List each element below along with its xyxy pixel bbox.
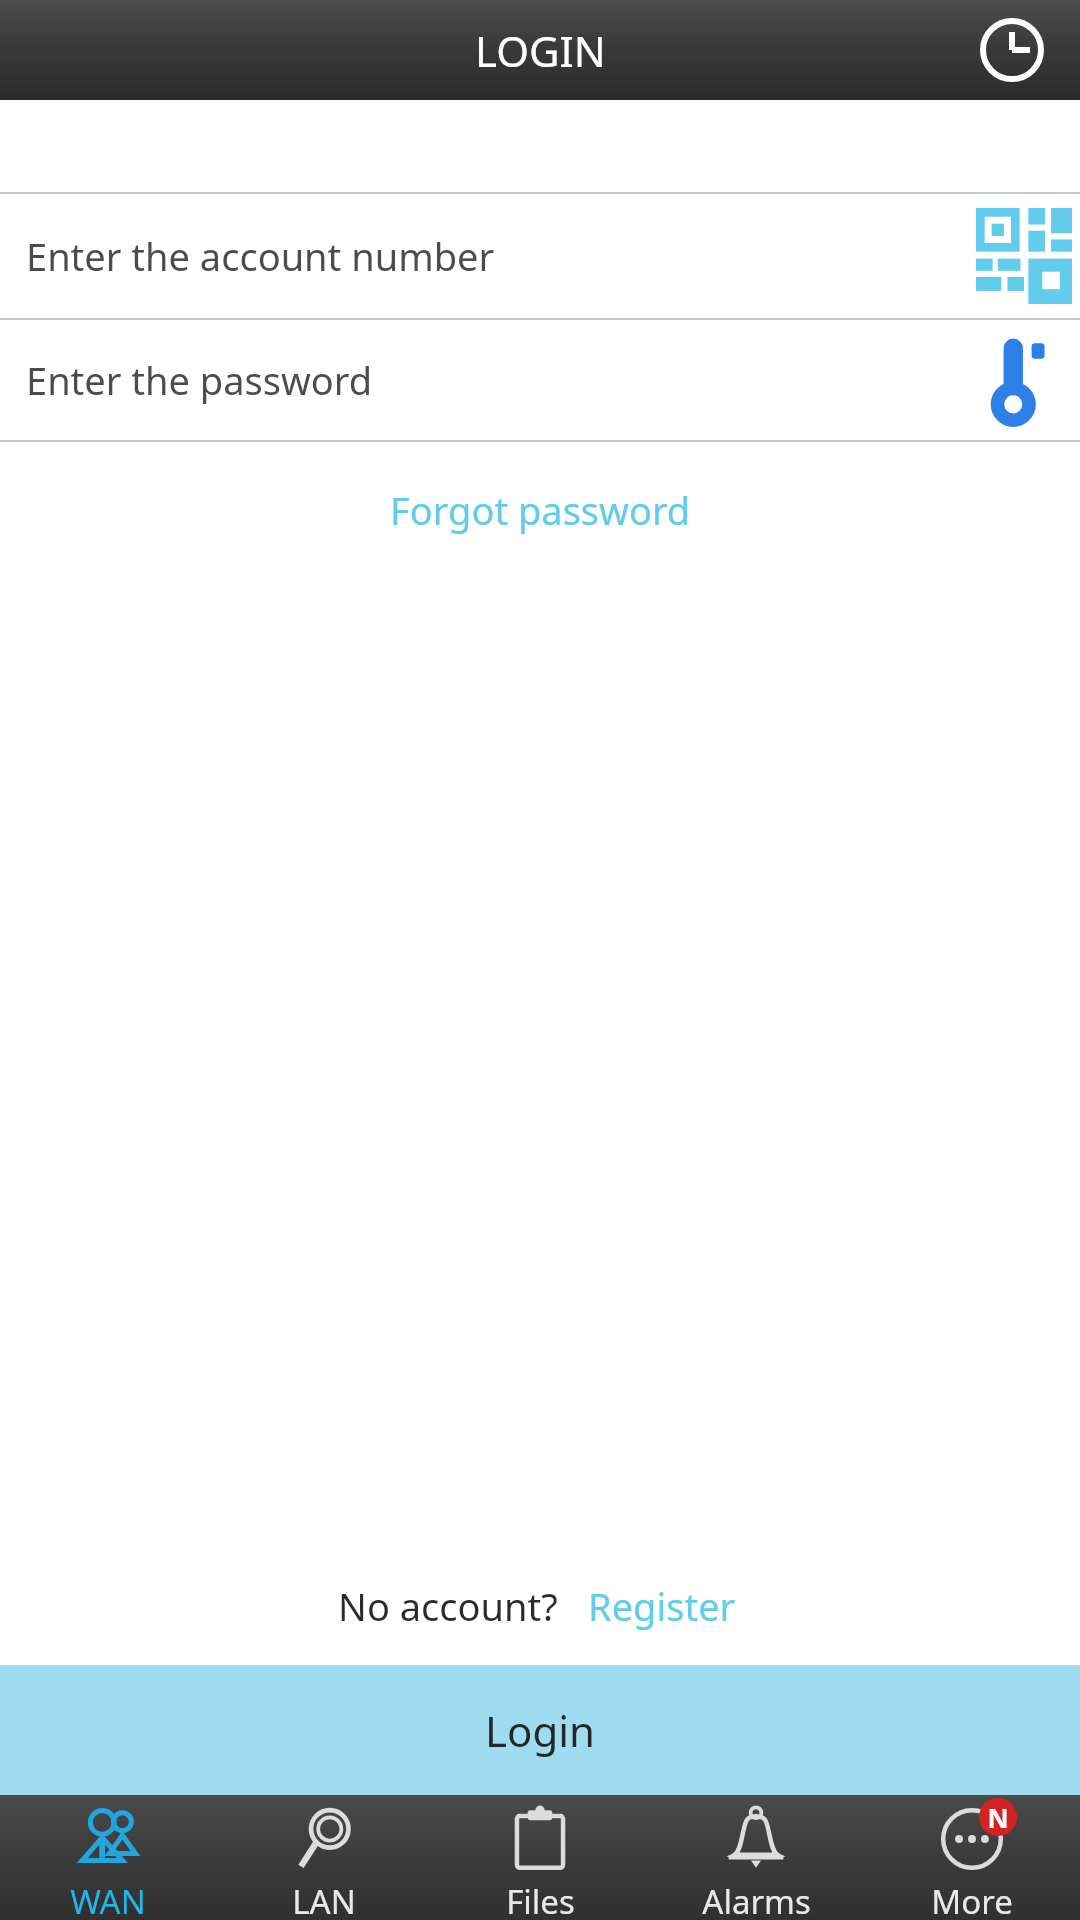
button[interactable]: Files — [432, 1795, 648, 1920]
button[interactable]: Alarms — [648, 1795, 864, 1920]
staticText: No account? — [338, 1580, 558, 1632]
staticText: Forgot password — [390, 484, 691, 536]
button[interactable]: WAN — [0, 1795, 216, 1920]
staticText: WAN — [70, 1879, 146, 1920]
staticText: Files — [506, 1879, 575, 1920]
button[interactable]: Clock — [974, 12, 1050, 88]
button[interactable]: Enter the account number — [0, 194, 1080, 318]
button[interactable]: N — [864, 1795, 1080, 1920]
button[interactable]: Scan QR code — [972, 206, 1072, 306]
staticText: More — [931, 1879, 1013, 1920]
button[interactable]: Login — [0, 1665, 1080, 1795]
button[interactable]: Register — [582, 1570, 742, 1642]
staticText: Enter the password — [26, 354, 972, 406]
staticText: LAN — [292, 1879, 356, 1920]
button[interactable]: Show password — [972, 330, 1072, 430]
staticText: Login — [485, 1702, 596, 1759]
button[interactable]: LAN — [216, 1795, 432, 1920]
staticText: Register — [588, 1580, 736, 1632]
staticText: Enter the account number — [26, 230, 972, 282]
staticText: Alarms — [702, 1879, 811, 1920]
button[interactable]: Enter the password — [0, 320, 1080, 440]
staticText: LOGIN — [475, 22, 606, 79]
button[interactable]: Forgot password — [372, 472, 709, 548]
staticText: N — [987, 1800, 1009, 1835]
